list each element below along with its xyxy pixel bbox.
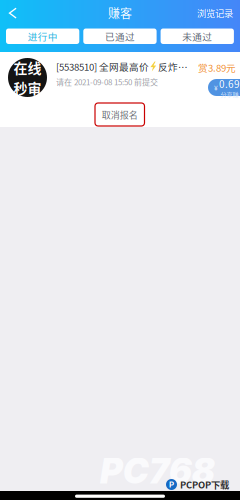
- staticText: 取消报名: [102, 108, 138, 121]
- staticText: [5538510]: [56, 59, 97, 73]
- staticText: 反炸…: [158, 59, 188, 73]
- staticText: 已通过: [105, 29, 135, 43]
- staticText: PC768: [100, 450, 215, 492]
- staticText: 全网最高价: [97, 59, 149, 73]
- button[interactable]: 未通过: [161, 28, 234, 44]
- staticText: 秒审: [13, 77, 41, 98]
- button[interactable]: 返回: [2, 2, 24, 24]
- staticText: ¥: [214, 83, 218, 92]
- staticText: 0.69: [219, 76, 240, 91]
- staticText: 分享赚: [220, 90, 238, 99]
- staticText: 浏览记录: [197, 6, 233, 20]
- staticText: 请在 2021-09-08 15:50 前提交: [56, 76, 158, 88]
- staticText: 在线: [13, 57, 41, 77]
- staticText: PCPOP下载: [180, 478, 229, 491]
- button[interactable]: 取消报名: [95, 103, 144, 126]
- staticText: 进行中: [28, 29, 58, 43]
- button[interactable]: 已通过: [83, 28, 157, 44]
- staticText: P: [169, 480, 174, 489]
- staticText: 赚客: [108, 4, 132, 22]
- staticText: 赏3.89元: [198, 60, 236, 74]
- button[interactable]: 浏览记录: [191, 2, 239, 24]
- button[interactable]: 进行中: [6, 28, 79, 44]
- staticText: 未通过: [182, 29, 212, 43]
